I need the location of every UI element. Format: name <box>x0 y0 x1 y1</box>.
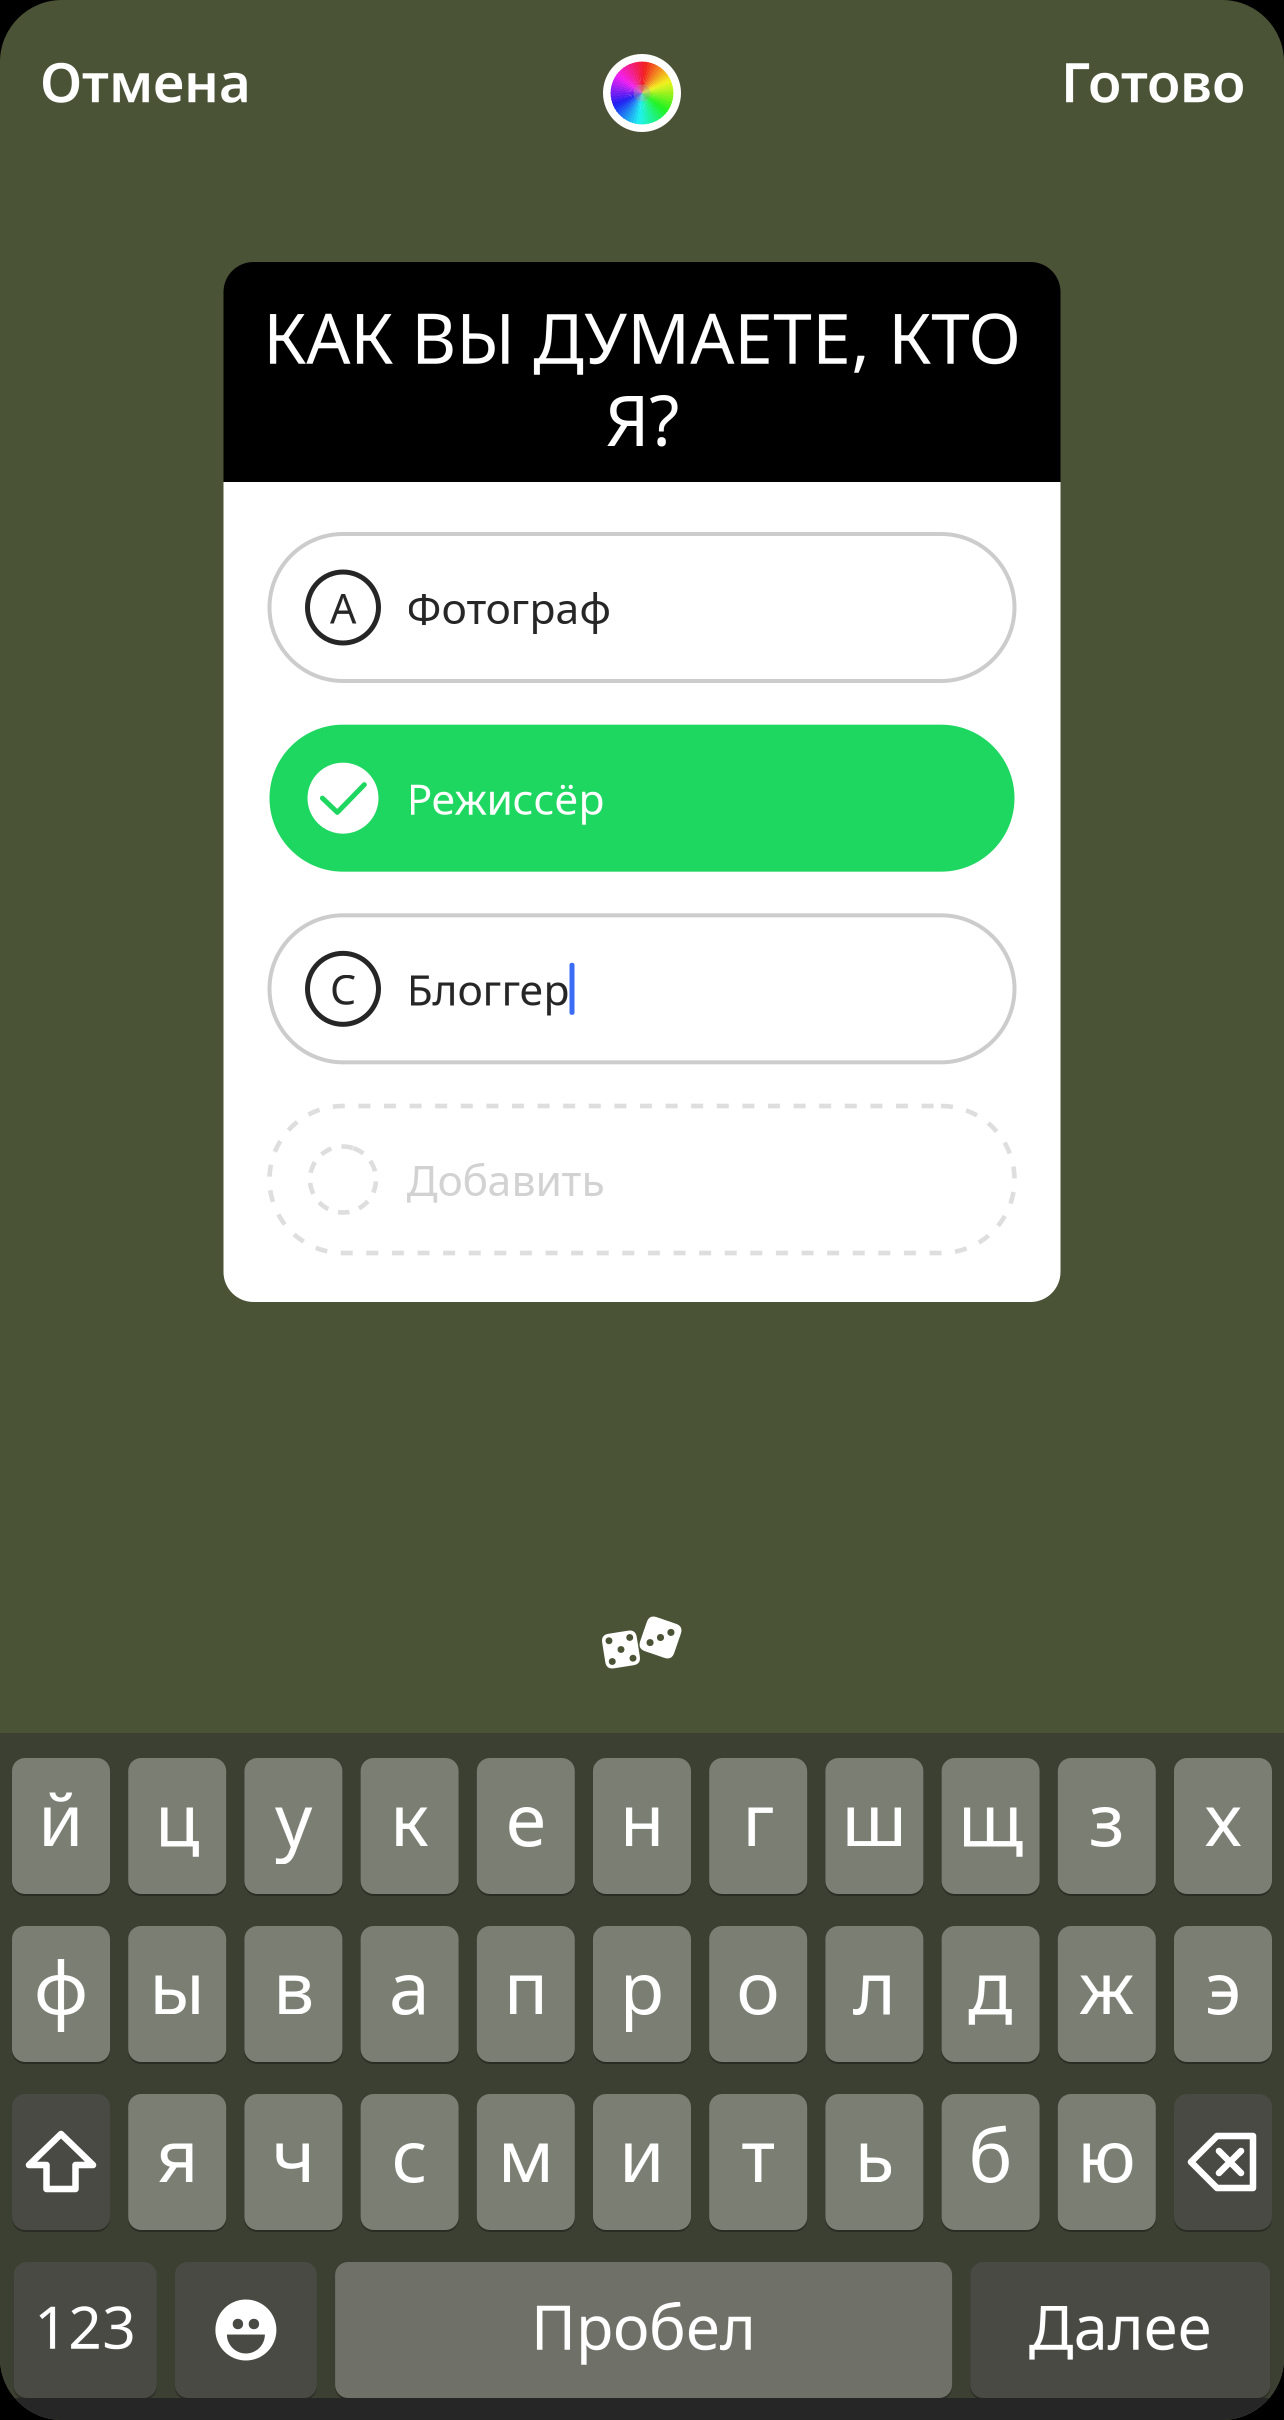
button[interactable]: ф <box>12 1926 110 2062</box>
staticText: х <box>1204 1769 1241 1867</box>
button[interactable]: т <box>709 2094 807 2230</box>
staticText: в <box>273 1937 314 2035</box>
button[interactable]: г <box>709 1758 807 1894</box>
staticText: л <box>853 1937 896 2035</box>
button[interactable]: Delete <box>1174 2094 1272 2230</box>
staticText: ш <box>841 1769 907 1867</box>
staticText: э <box>1205 1937 1241 2035</box>
button[interactable]: и <box>593 2094 691 2230</box>
button[interactable]: ж <box>1058 1926 1156 2062</box>
button[interactable]: ы <box>128 1926 226 2062</box>
button[interactable]: н <box>593 1758 691 1894</box>
staticText: к <box>390 1769 429 1867</box>
button[interactable]: Отмена <box>0 27 275 135</box>
button[interactable]: я <box>128 2094 226 2230</box>
button[interactable]: Emoji <box>175 2262 317 2398</box>
staticText: 123 <box>34 2287 136 2365</box>
staticText: ч <box>272 2105 315 2203</box>
button[interactable]: ш <box>825 1758 923 1894</box>
staticText: Фотограф <box>406 579 610 636</box>
staticText: Отмена <box>40 45 251 117</box>
staticText: КАК ВЫ ДУМАЕТЕ, КТО Я? <box>263 291 1021 465</box>
button[interactable]: л <box>825 1926 923 2062</box>
button[interactable]: ь <box>825 2094 923 2230</box>
staticText: у <box>275 1769 312 1867</box>
staticText: ю <box>1077 2105 1136 2203</box>
button[interactable]: р <box>593 1926 691 2062</box>
staticText: г <box>742 1769 774 1867</box>
button[interactable]: A <box>269 534 1014 681</box>
button[interactable]: Готово <box>1037 27 1284 135</box>
staticText: ь <box>854 2105 894 2203</box>
staticText: ы <box>149 1937 205 2035</box>
staticText: р <box>619 1937 664 2035</box>
button[interactable]: а <box>361 1926 459 2062</box>
staticText: я <box>156 2105 198 2203</box>
button[interactable]: э <box>1174 1926 1272 2062</box>
button[interactable]: C <box>269 915 1014 1062</box>
staticText: м <box>498 2105 554 2203</box>
staticText: з <box>1089 1769 1125 1867</box>
staticText: т <box>741 2105 775 2203</box>
staticText: н <box>619 1769 664 1867</box>
button[interactable]: м <box>477 2094 575 2230</box>
button[interactable]: ч <box>244 2094 342 2230</box>
staticText: Режиссёр <box>406 770 604 826</box>
staticText: A <box>330 580 356 635</box>
button[interactable]: Далее <box>970 2262 1270 2398</box>
button[interactable]: д <box>942 1926 1040 2062</box>
button[interactable]: с <box>361 2094 459 2230</box>
button[interactable]: х <box>1174 1758 1272 1894</box>
staticText: о <box>736 1937 780 2035</box>
button[interactable]: з <box>1058 1758 1156 1894</box>
button[interactable]: Shift <box>12 2094 110 2230</box>
staticText: Добавить <box>406 1151 604 1208</box>
button[interactable]: к <box>361 1758 459 1894</box>
button[interactable]: Пробел <box>335 2262 952 2398</box>
staticText: ф <box>34 1937 88 2035</box>
button[interactable]: ю <box>1058 2094 1156 2230</box>
staticText: Блоггер <box>406 960 569 1017</box>
button[interactable]: п <box>477 1926 575 2062</box>
staticText: б <box>969 2105 1013 2203</box>
staticText: п <box>504 1937 548 2035</box>
button[interactable]: щ <box>942 1758 1040 1894</box>
button[interactable]: е <box>477 1758 575 1894</box>
staticText: C <box>330 961 356 1016</box>
button[interactable]: Добавить <box>269 1106 1014 1253</box>
button[interactable]: 123 <box>14 2262 157 2398</box>
button[interactable]: о <box>709 1926 807 2062</box>
staticText: й <box>38 1769 84 1867</box>
button[interactable]: в <box>244 1926 342 2062</box>
staticText: д <box>968 1937 1013 2035</box>
button[interactable]: Colour picker <box>603 54 681 132</box>
button[interactable]: б <box>942 2094 1040 2230</box>
staticText: ц <box>155 1769 200 1867</box>
staticText: щ <box>958 1769 1024 1867</box>
button[interactable]: й <box>12 1758 110 1894</box>
staticText: и <box>619 2105 665 2203</box>
button[interactable]: у <box>244 1758 342 1894</box>
button[interactable]: Режиссёр <box>269 725 1014 872</box>
staticText: ж <box>1079 1937 1135 2035</box>
staticText: Пробел <box>531 2285 756 2367</box>
staticText: с <box>392 2105 428 2203</box>
staticText: е <box>506 1769 546 1867</box>
staticText: Готово <box>1061 45 1245 117</box>
staticText: а <box>389 1937 430 2035</box>
button[interactable]: Shuffle <box>592 1592 692 1692</box>
staticText: Далее <box>1029 2285 1212 2367</box>
button[interactable]: ц <box>128 1758 226 1894</box>
